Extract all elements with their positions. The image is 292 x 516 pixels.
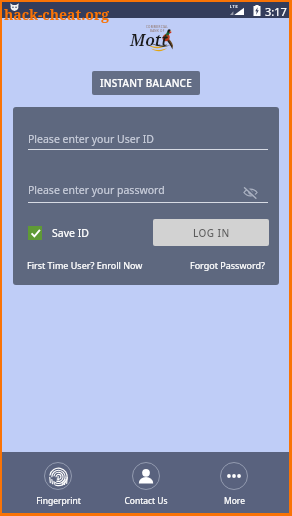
staticText: Forgot Password? [190, 259, 265, 271]
staticText: Contact Us [124, 495, 168, 507]
staticText: 3:17 [265, 4, 287, 19]
staticText: More [224, 495, 245, 507]
staticText: BANK OF [150, 29, 165, 33]
button[interactable]: Fingerprint [14, 452, 102, 513]
button[interactable]: Contact Us [102, 452, 190, 513]
staticText: COMMERCIAL [146, 25, 169, 29]
button[interactable]: LOG IN [153, 219, 269, 246]
button[interactable]: First Time User? Enroll Now [27, 259, 143, 271]
button[interactable]: Forgot Password? [190, 259, 265, 271]
button[interactable]: Show password [242, 184, 258, 200]
staticText: Save ID [52, 226, 89, 240]
staticText: Please enter your User ID [28, 132, 154, 146]
staticText: hack-cheat.org [4, 5, 110, 24]
button[interactable]: Save ID [28, 226, 89, 240]
staticText: INSTANT BALANCE [100, 76, 192, 90]
staticText: Please enter your password [28, 183, 165, 197]
staticText: Mott [130, 29, 168, 51]
button[interactable]: INSTANT BALANCE [92, 71, 200, 95]
staticText: Fingerprint [36, 495, 81, 507]
staticText: LOG IN [193, 226, 230, 240]
button[interactable]: More [190, 452, 278, 513]
